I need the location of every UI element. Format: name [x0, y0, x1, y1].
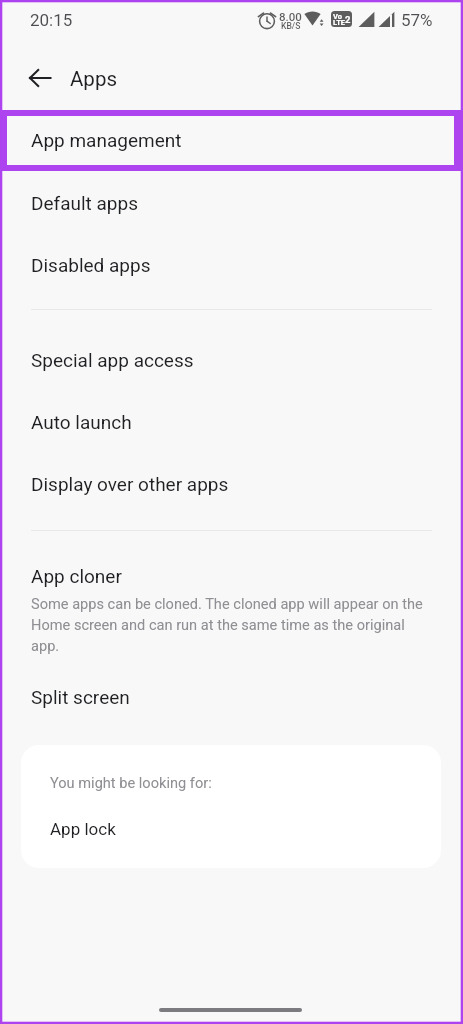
staticText: Default apps — [31, 192, 138, 214]
button[interactable]: Display over other apps — [0, 454, 463, 516]
staticText: KB/S — [281, 21, 301, 31]
staticText: 8.00 — [279, 10, 302, 23]
staticText: LTE — [333, 18, 346, 27]
button[interactable]: Special app access — [0, 330, 463, 392]
staticText: App cloner — [31, 565, 122, 587]
button[interactable]: Default apps — [0, 173, 463, 235]
staticText: Split screen — [31, 686, 130, 708]
button[interactable]: Back — [20, 58, 60, 98]
button[interactable]: App management — [7, 116, 454, 165]
staticText: Home screen and can run at the same time… — [31, 616, 405, 633]
staticText: Disabled apps — [31, 254, 151, 276]
button[interactable]: Auto launch — [0, 392, 463, 454]
staticText: Vo — [333, 12, 342, 21]
staticText: 2 — [345, 14, 351, 25]
button[interactable]: App cloner — [0, 548, 463, 664]
staticText: Auto launch — [31, 411, 132, 433]
staticText: 20:15 — [30, 10, 73, 30]
button[interactable]: Disabled apps — [0, 235, 463, 297]
staticText: Some apps can be cloned. The cloned app … — [31, 595, 423, 612]
staticText: App lock — [50, 819, 116, 839]
staticText: Display over other apps — [31, 473, 229, 495]
button[interactable]: You might be looking for: — [21, 745, 441, 868]
staticText: 57% — [401, 10, 433, 30]
staticText: Special app access — [31, 349, 194, 371]
staticText: Apps — [70, 67, 117, 91]
staticText: app. — [31, 637, 60, 654]
button[interactable]: Split screen — [0, 666, 463, 728]
staticText: App management — [31, 129, 182, 151]
staticText: You might be looking for: — [50, 774, 212, 791]
